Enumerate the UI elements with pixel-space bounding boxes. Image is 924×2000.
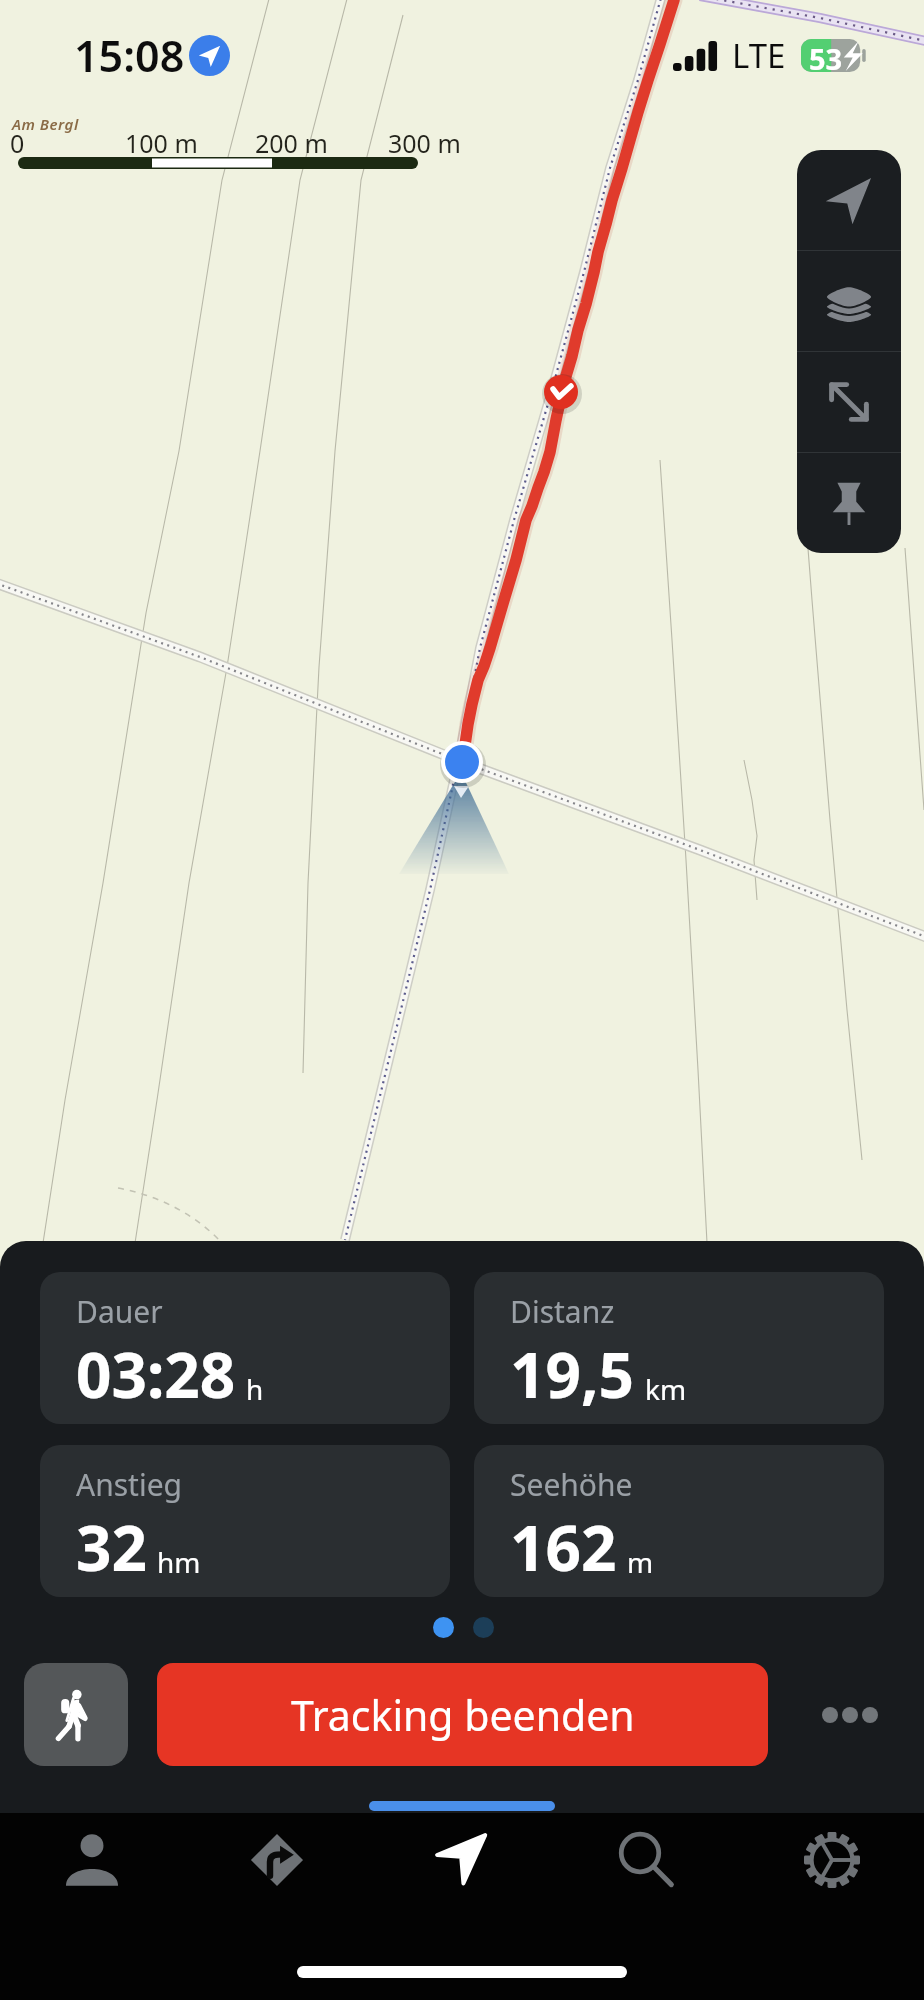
button[interactable]: Locate xyxy=(797,150,901,250)
staticText: 32 xyxy=(76,1505,147,1589)
button[interactable]: Search xyxy=(554,1832,739,1888)
staticText: m xyxy=(627,1543,654,1581)
staticText: 03:28 xyxy=(76,1332,236,1416)
staticText: h xyxy=(246,1370,264,1408)
button[interactable]: Settings xyxy=(739,1832,924,1888)
staticText: LTE xyxy=(732,33,786,78)
staticText: 19,5 xyxy=(510,1332,635,1416)
staticText: 200 m xyxy=(255,126,328,160)
staticText: 100 m xyxy=(125,126,198,160)
staticText: Distanz xyxy=(510,1291,615,1332)
button[interactable]: Anstieg xyxy=(40,1445,450,1597)
staticText: Seehöhe xyxy=(510,1464,633,1505)
button[interactable]: Pin xyxy=(797,453,901,553)
button[interactable]: Seehöhe xyxy=(474,1445,884,1597)
button[interactable]: Map layers xyxy=(797,251,901,351)
staticText: 300 m xyxy=(388,126,461,160)
staticText: km xyxy=(645,1370,687,1408)
button[interactable]: Dauer xyxy=(40,1272,450,1424)
button[interactable]: Expand xyxy=(797,352,901,452)
button[interactable]: Tracking beenden xyxy=(157,1663,768,1766)
staticText: 53 xyxy=(809,39,843,71)
staticText: Tracking beenden xyxy=(291,1687,635,1743)
staticText: Dauer xyxy=(76,1291,163,1332)
button[interactable]: Distanz xyxy=(474,1272,884,1424)
button[interactable]: Profile xyxy=(0,1832,184,1888)
staticText: 162 xyxy=(510,1505,617,1589)
staticText: 15:08 xyxy=(74,26,185,85)
button[interactable]: Activity type: hiking xyxy=(24,1663,128,1766)
staticText: Am Bergl xyxy=(12,114,79,134)
button[interactable]: Navigate xyxy=(369,1832,554,1888)
staticText: hm xyxy=(157,1543,201,1581)
staticText: Anstieg xyxy=(76,1464,183,1505)
staticText: 0 xyxy=(10,126,25,160)
button[interactable]: Directions xyxy=(184,1832,369,1888)
button[interactable]: More options xyxy=(796,1670,904,1760)
